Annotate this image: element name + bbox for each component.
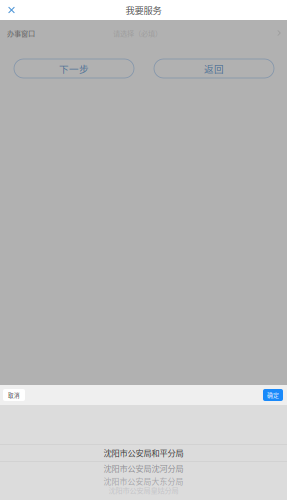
staticText: 我要服务 (125, 3, 161, 17)
button[interactable]: 确定 (263, 389, 283, 401)
staticText: 请选择（必填） (113, 28, 162, 38)
button[interactable]: 下一步 (14, 59, 134, 78)
button[interactable]: Close (0, 0, 23, 20)
staticText: 确定 (267, 391, 279, 399)
staticText: 沈阳市公安局大东分局 (103, 475, 183, 487)
staticText: 取消 (8, 391, 20, 399)
staticText: 返回 (204, 61, 224, 75)
staticText: 沈阳市公安局和平分局 (103, 447, 183, 459)
staticText: 下一步 (59, 61, 89, 75)
staticText: 沈阳市公安局沈河分局 (103, 462, 183, 474)
button[interactable]: 返回 (154, 59, 274, 78)
button[interactable]: 取消 (3, 389, 25, 401)
staticText: 办事窗口 (7, 28, 35, 38)
staticText: 沈阳市公安局皇姑分局 (108, 485, 178, 495)
